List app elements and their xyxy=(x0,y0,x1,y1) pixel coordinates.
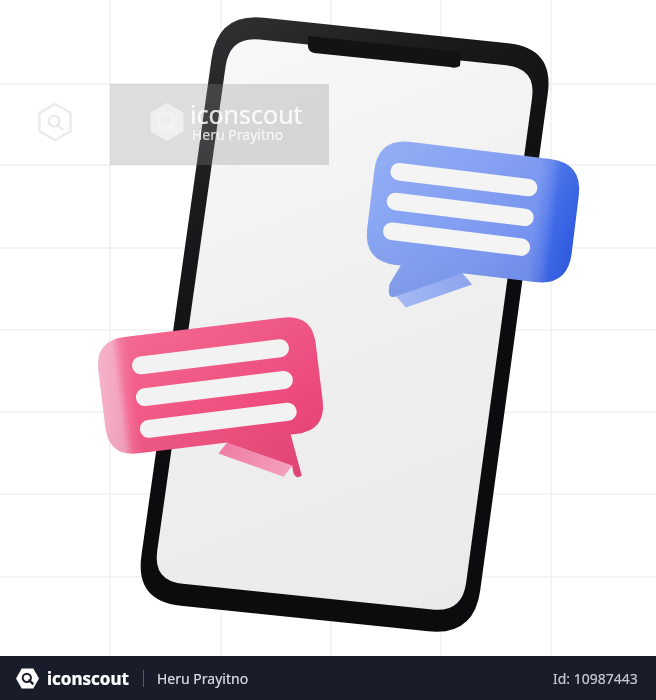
staticText: Heru Prayitno xyxy=(192,125,284,144)
other: Iconscout logo xyxy=(16,667,39,690)
staticText: Id: 10987443 xyxy=(553,669,638,688)
button[interactable]: Iconscout logo xyxy=(16,667,129,690)
staticText: Heru Prayitno xyxy=(157,669,249,688)
staticText: iconscout xyxy=(47,667,129,690)
staticText: iconscout xyxy=(190,97,303,131)
